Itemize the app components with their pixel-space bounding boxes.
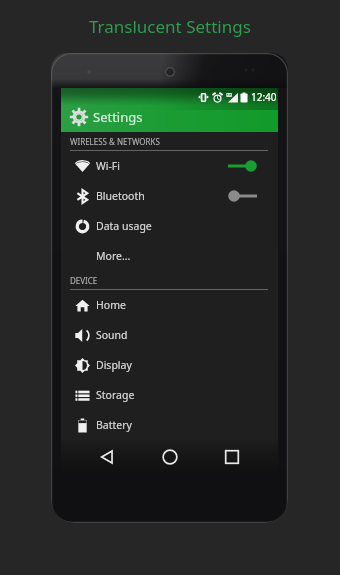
staticText: 12:40 <box>251 90 277 104</box>
staticText: Data usage <box>96 219 152 233</box>
staticText: Bluetooth <box>96 189 145 203</box>
staticText: More… <box>96 249 131 263</box>
staticText: Sound <box>96 328 128 342</box>
staticText: Wi-Fi <box>96 159 121 173</box>
staticText: Translucent Settings <box>89 15 251 38</box>
button[interactable]: Wi-Fi <box>61 151 278 181</box>
button[interactable]: Sound <box>61 320 278 350</box>
button[interactable]: Display <box>61 350 278 380</box>
button[interactable]: Home <box>153 440 187 474</box>
button[interactable]: Storage <box>61 380 278 410</box>
staticText: Home <box>96 298 126 312</box>
staticText: Battery <box>96 418 132 432</box>
button[interactable]: Bluetooth <box>61 181 278 211</box>
staticText: Display <box>96 358 132 372</box>
button[interactable]: Recents <box>215 440 249 474</box>
button[interactable]: Back <box>90 440 124 474</box>
button[interactable]: Home <box>61 290 278 320</box>
button[interactable]: More… <box>61 241 278 271</box>
staticText: DEVICE <box>70 275 98 286</box>
button[interactable]: Battery <box>61 410 278 440</box>
button[interactable]: Data usage <box>61 211 278 241</box>
staticText: Storage <box>96 388 135 402</box>
staticText: Settings <box>93 108 143 126</box>
staticText: WIRELESS & NETWORKS <box>70 136 160 147</box>
